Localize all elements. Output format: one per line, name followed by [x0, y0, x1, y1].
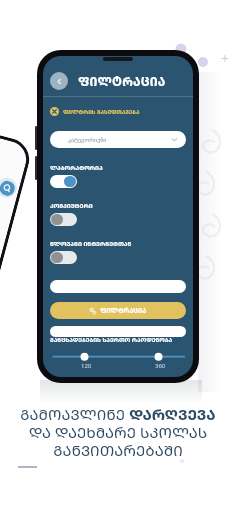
button[interactable]: ᲤᲘᲚᲢᲠᲘᲡ ᲒᲐᲡᲣᲤᲗᲐᲕᲔᲑᲐ	[50, 106, 140, 117]
button[interactable]: Back	[50, 72, 68, 90]
staticText: ᲤᲘᲚᲢᲠᲘᲡ ᲒᲐᲡᲣᲤᲗᲐᲕᲔᲑᲐ	[63, 108, 140, 116]
staticText: ᲙᲝᲛᲞᲘᲣᲢᲔᲠᲘ	[50, 202, 93, 210]
staticText: კატეგორიები	[68, 136, 107, 143]
staticText: ᲒᲐᲜᲪᲮᲐᲓᲔᲑᲔᲑᲘᲡ ᲡᲐᲔᲠᲗᲝ ᲠᲐᲝᲓᲔᲜᲝᲑᲐ	[50, 336, 173, 344]
staticText: ᲚᲐᲑᲝᲠᲐᲢᲝᲠᲘᲐ	[50, 164, 103, 172]
staticText: ᲒᲐᲛᲝᲐᲕᲚᲘᲜᲔ ᲓᲐᲠᲦᲕᲔᲕᲐ ᲓᲐ ᲓᲐᲔᲮᲛᲐᲠᲔ ᲡᲙᲝᲚᲐᲡ Გ…	[20, 404, 216, 461]
button[interactable]: ᲬᲚᲝᲕᲐᲜᲘ ᲘᲜᲢᲔᲠᲜᲔᲢᲗᲐᲜ	[50, 251, 77, 264]
button[interactable]: ᲙᲝᲛᲞᲘᲣᲢᲔᲠᲘ	[50, 213, 77, 226]
button[interactable]: ᲤᲘᲚᲢᲠᲐᲪᲘᲐ	[50, 302, 186, 319]
button[interactable]	[50, 280, 186, 293]
staticText: ᲤᲘᲚᲢᲠᲐᲪᲘᲐ	[100, 306, 147, 315]
button[interactable]: ᲚᲐᲑᲝᲠᲐᲢᲝᲠᲘᲐ	[50, 175, 77, 188]
button[interactable]: Search	[0, 179, 16, 198]
staticText: ᲬᲚᲝᲕᲐᲜᲘ ᲘᲜᲢᲔᲠᲜᲔᲢᲗᲐᲜ	[50, 240, 132, 248]
staticText: ᲤᲘᲚᲢᲠᲐᲪᲘᲐ	[78, 73, 166, 89]
staticText: 360	[155, 362, 166, 370]
staticText: 120	[81, 362, 92, 370]
button[interactable]: კატეგორიები	[50, 131, 186, 148]
